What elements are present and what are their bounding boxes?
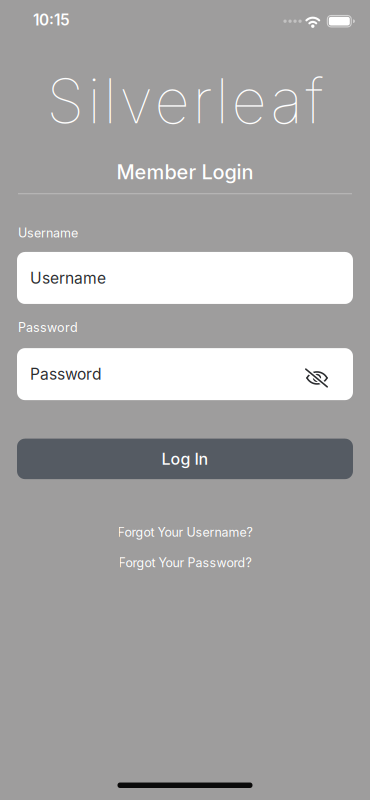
button[interactable]: Forgot Your Password? [118,555,251,570]
button[interactable]: Forgot Your Username? [117,525,252,540]
staticText: 10:15 [33,11,70,29]
staticText: Password [30,365,102,384]
staticText: Log In [161,449,208,469]
staticText: Member Login [116,160,253,184]
staticText: Forgot Your Password? [118,555,251,570]
button[interactable]: Show password [305,364,353,384]
staticText: Password [18,320,78,335]
button[interactable]: Log In [17,439,353,479]
staticText: Username [18,225,78,240]
staticText: Forgot Your Username? [117,525,252,540]
staticText: Username [30,268,106,287]
staticText: Silverleaf [46,64,323,138]
